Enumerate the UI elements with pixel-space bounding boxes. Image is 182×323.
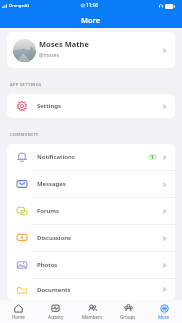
staticText: Notifications (37, 153, 75, 161)
staticText: Photos (37, 261, 58, 269)
button[interactable]: Settings (7, 94, 175, 118)
staticText: Documents (37, 286, 71, 294)
staticText: Messages (37, 180, 66, 188)
staticText: Groups (120, 314, 136, 320)
button[interactable]: Notifications (7, 144, 175, 170)
button[interactable]: Activity (37, 300, 74, 323)
button[interactable]: Photos (7, 252, 175, 278)
staticText: COMMUNITY (10, 132, 39, 137)
button[interactable]: Members (74, 300, 110, 323)
button[interactable]: Documents (7, 279, 175, 300)
staticText: Moses Mathe (39, 39, 89, 49)
staticText: APP SETTINGS (10, 82, 42, 87)
staticText: Activity (48, 314, 64, 320)
staticText: 4G (24, 3, 30, 8)
staticText: Orange (9, 3, 24, 9)
button[interactable]: Groups (110, 300, 146, 323)
button[interactable]: More (146, 300, 182, 323)
staticText: Home (12, 314, 25, 320)
staticText: Forums (37, 207, 60, 215)
button[interactable]: Forums (7, 198, 175, 224)
staticText: More (81, 15, 101, 25)
button[interactable]: Discussions (7, 225, 175, 251)
staticText: Discussions (37, 234, 71, 242)
button[interactable]: Messages (7, 171, 175, 197)
button[interactable]: Moses Mathe (7, 32, 175, 68)
staticText: @moses (39, 52, 59, 59)
staticText: 11:16 (86, 2, 98, 8)
staticText: More (158, 314, 170, 320)
staticText: Members (82, 314, 103, 320)
button[interactable]: Home (0, 300, 37, 323)
staticText: Settings (37, 102, 61, 110)
staticText: 1 (151, 154, 154, 160)
